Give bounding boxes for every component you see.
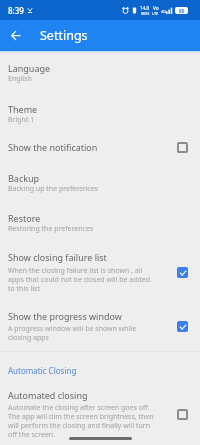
button[interactable]: Show the notification (0, 141, 200, 153)
button[interactable]: Restore (0, 212, 200, 234)
staticText: LTE (152, 11, 159, 16)
button[interactable]: Language (0, 62, 200, 84)
staticText: A progress window will be shown while cl… (8, 324, 154, 342)
staticText: When the closing failure list is shown ,… (8, 266, 154, 293)
button[interactable]: Show closing failure list (0, 251, 200, 293)
staticText: Show the notification (8, 141, 98, 153)
button[interactable]: Back (0, 20, 31, 51)
staticText: 8:39 (8, 5, 24, 16)
staticText: Theme (8, 103, 38, 115)
button[interactable]: Automated closing (0, 389, 200, 439)
button[interactable]: Theme (0, 103, 200, 125)
staticText: 4G (161, 9, 166, 14)
staticText: Show the progress window (8, 310, 122, 322)
staticText: 14.0 (140, 5, 150, 11)
staticText: Backing up the preferences (8, 184, 98, 194)
staticText: Automatic Closing (8, 365, 77, 376)
staticText: Vo (153, 5, 159, 11)
staticText: Show closing failure list (8, 251, 107, 263)
staticText: Settings (40, 27, 88, 44)
staticText: Language (8, 62, 51, 74)
staticText: KB/S (141, 11, 150, 16)
staticText: Restore (8, 212, 41, 224)
staticText: Restoring the preferences (8, 224, 94, 234)
staticText: 80 (179, 8, 185, 14)
staticText: English (8, 74, 32, 84)
staticText: Automate the closing after screen goes o… (8, 403, 154, 439)
staticText: Automated closing (8, 389, 88, 401)
staticText: Bright 1 (8, 115, 35, 125)
staticText: Backup (8, 172, 40, 184)
button[interactable]: Backup (0, 172, 200, 194)
button[interactable]: Show the progress window (0, 310, 200, 342)
